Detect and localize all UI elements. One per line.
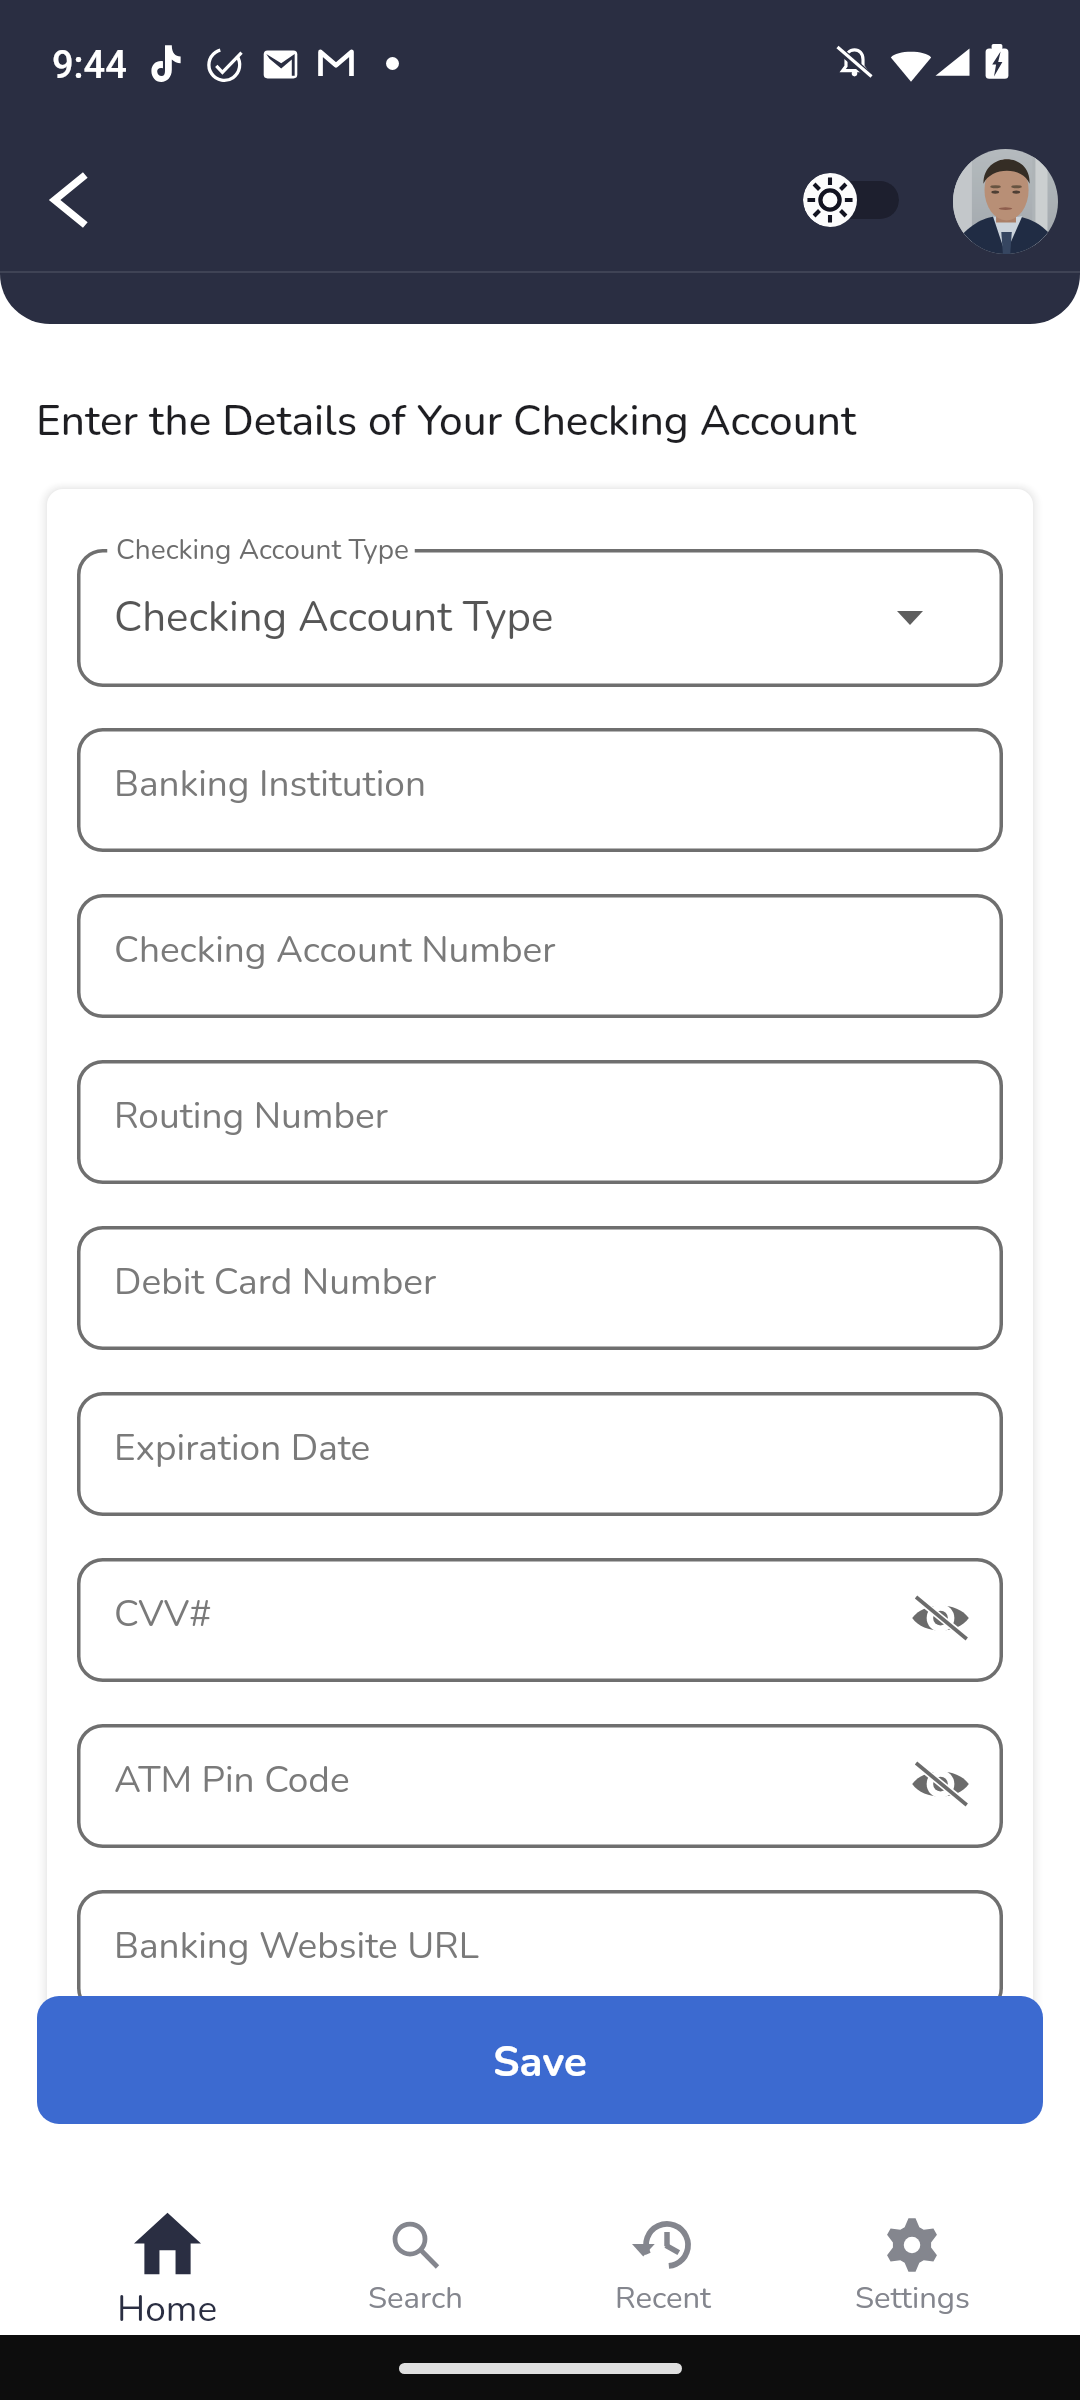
button[interactable]: Back (28, 158, 112, 242)
staticText: Expiration Date (114, 1423, 371, 1473)
staticText: Banking Website URL (114, 1921, 479, 1971)
staticText: Checking Account Type (116, 531, 409, 569)
button[interactable]: Recent (539, 2190, 787, 2330)
staticText: Checking Account Number (114, 925, 556, 975)
staticText: 9:44 (52, 43, 127, 88)
staticText: Checking Account Type (114, 589, 554, 646)
staticText: Enter the Details of Your Checking Accou… (36, 392, 857, 450)
button[interactable]: Debit Card Number (77, 1226, 1003, 1350)
staticText: Home (117, 2284, 218, 2334)
button[interactable]: Routing Number (77, 1060, 1003, 1184)
staticText: ATM Pin Code (114, 1755, 350, 1805)
button[interactable]: Checking Account Number (77, 894, 1003, 1018)
button[interactable]: ATM Pin Code (77, 1724, 1003, 1848)
button[interactable]: Expiration Date (77, 1392, 1003, 1516)
staticText: Routing Number (114, 1091, 388, 1141)
staticText: Search (368, 2277, 463, 2319)
button[interactable]: Banking Institution (77, 728, 1003, 852)
staticText: CVV# (114, 1589, 212, 1639)
staticText: Settings (855, 2277, 970, 2319)
button[interactable]: Profile (953, 149, 1058, 254)
button[interactable]: Banking Website URL (77, 1890, 1003, 2014)
button[interactable]: Search (291, 2190, 539, 2330)
button[interactable]: Settings (788, 2190, 1036, 2330)
staticText: Save (493, 2034, 587, 2091)
button[interactable]: Checking Account Type (77, 530, 1003, 687)
button[interactable]: CVV# (77, 1558, 1003, 1682)
staticText: Recent (615, 2277, 711, 2319)
button[interactable]: Home (43, 2190, 291, 2330)
button[interactable]: Save (37, 1996, 1043, 2124)
staticText: Banking Institution (114, 759, 426, 809)
staticText: Debit Card Number (114, 1257, 437, 1307)
button[interactable]: Toggle theme (803, 173, 899, 227)
